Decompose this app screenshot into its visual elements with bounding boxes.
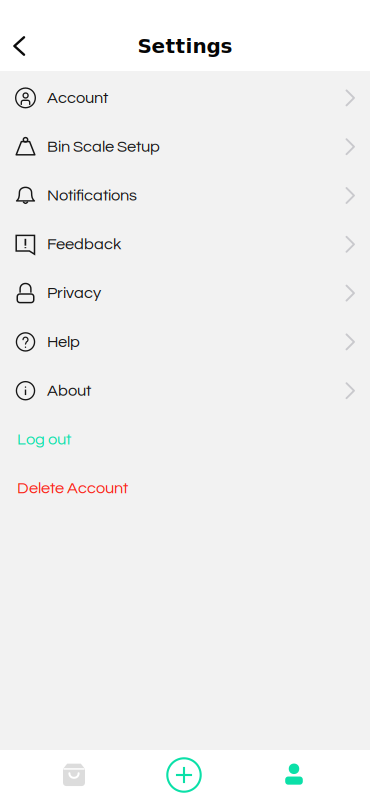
button[interactable]: Add [129,750,239,800]
button[interactable]: Bin Scale Setup [0,122,370,171]
staticText: About [47,382,91,399]
button[interactable]: Shop [19,750,129,800]
staticText: Settings [137,34,232,58]
button[interactable]: About [0,366,370,415]
staticText: Feedback [47,236,121,253]
button[interactable]: Delete Account [0,464,370,513]
staticText: Bin Scale Setup [47,138,160,155]
button[interactable]: Log out [0,415,370,464]
staticText: Log out [17,431,71,448]
button[interactable]: Privacy [0,269,370,317]
button[interactable]: Feedback [0,220,370,269]
staticText: Privacy [47,285,101,302]
staticText: Delete Account [17,480,128,497]
button[interactable]: Back [0,24,41,68]
staticText: Help [47,333,80,350]
button[interactable]: Help [0,317,370,366]
staticText: Account [47,89,108,106]
staticText: Notifications [47,187,137,204]
button[interactable]: Profile [239,750,349,800]
button[interactable]: Notifications [0,171,370,220]
button[interactable]: Account [0,73,370,122]
